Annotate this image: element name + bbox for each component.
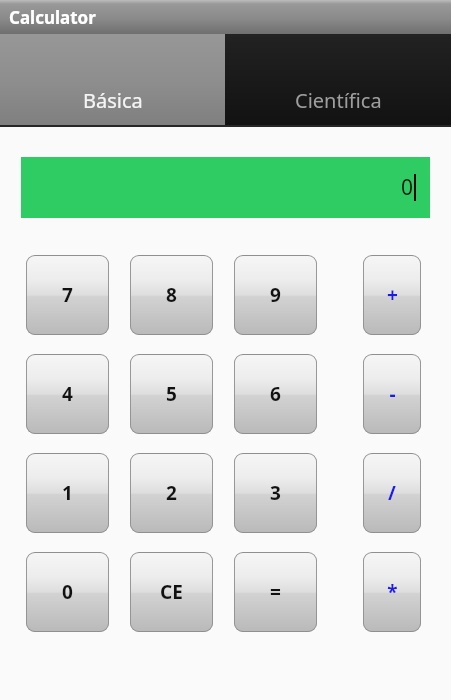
staticText: 5 <box>166 381 177 407</box>
staticText: 0 <box>401 173 414 202</box>
staticText: 8 <box>166 282 177 308</box>
button[interactable]: 1 <box>26 453 109 533</box>
staticText: / <box>388 480 396 506</box>
staticText: = <box>270 579 281 605</box>
button[interactable]: = <box>234 552 317 632</box>
staticText: 9 <box>270 282 281 308</box>
button[interactable]: 9 <box>234 255 317 335</box>
staticText: CE <box>160 579 183 605</box>
button[interactable]: 7 <box>26 255 109 335</box>
staticText: Calculator <box>9 6 96 29</box>
button[interactable]: Básica <box>0 34 225 125</box>
staticText: Básica <box>83 87 143 114</box>
button[interactable]: 5 <box>130 354 213 434</box>
staticText: Científica <box>295 87 382 114</box>
button[interactable]: / <box>363 453 421 533</box>
button[interactable]: 8 <box>130 255 213 335</box>
staticText: 1 <box>62 480 73 506</box>
staticText: + <box>387 282 398 308</box>
staticText: 7 <box>62 282 73 308</box>
button[interactable]: 4 <box>26 354 109 434</box>
button[interactable]: Científica <box>225 34 451 125</box>
staticText: * <box>387 579 398 605</box>
button[interactable]: - <box>363 354 421 434</box>
staticText: 4 <box>62 381 73 407</box>
button[interactable]: 0 <box>26 552 109 632</box>
button[interactable]: * <box>363 552 421 632</box>
button[interactable]: 3 <box>234 453 317 533</box>
button[interactable]: 6 <box>234 354 317 434</box>
staticText: - <box>389 381 396 407</box>
button[interactable]: 2 <box>130 453 213 533</box>
button[interactable]: CE <box>130 552 213 632</box>
staticText: 3 <box>270 480 281 506</box>
button[interactable]: + <box>363 255 421 335</box>
staticText: 0 <box>62 579 73 605</box>
staticText: 6 <box>270 381 281 407</box>
staticText: 2 <box>166 480 177 506</box>
button[interactable]: 0 <box>21 157 430 218</box>
